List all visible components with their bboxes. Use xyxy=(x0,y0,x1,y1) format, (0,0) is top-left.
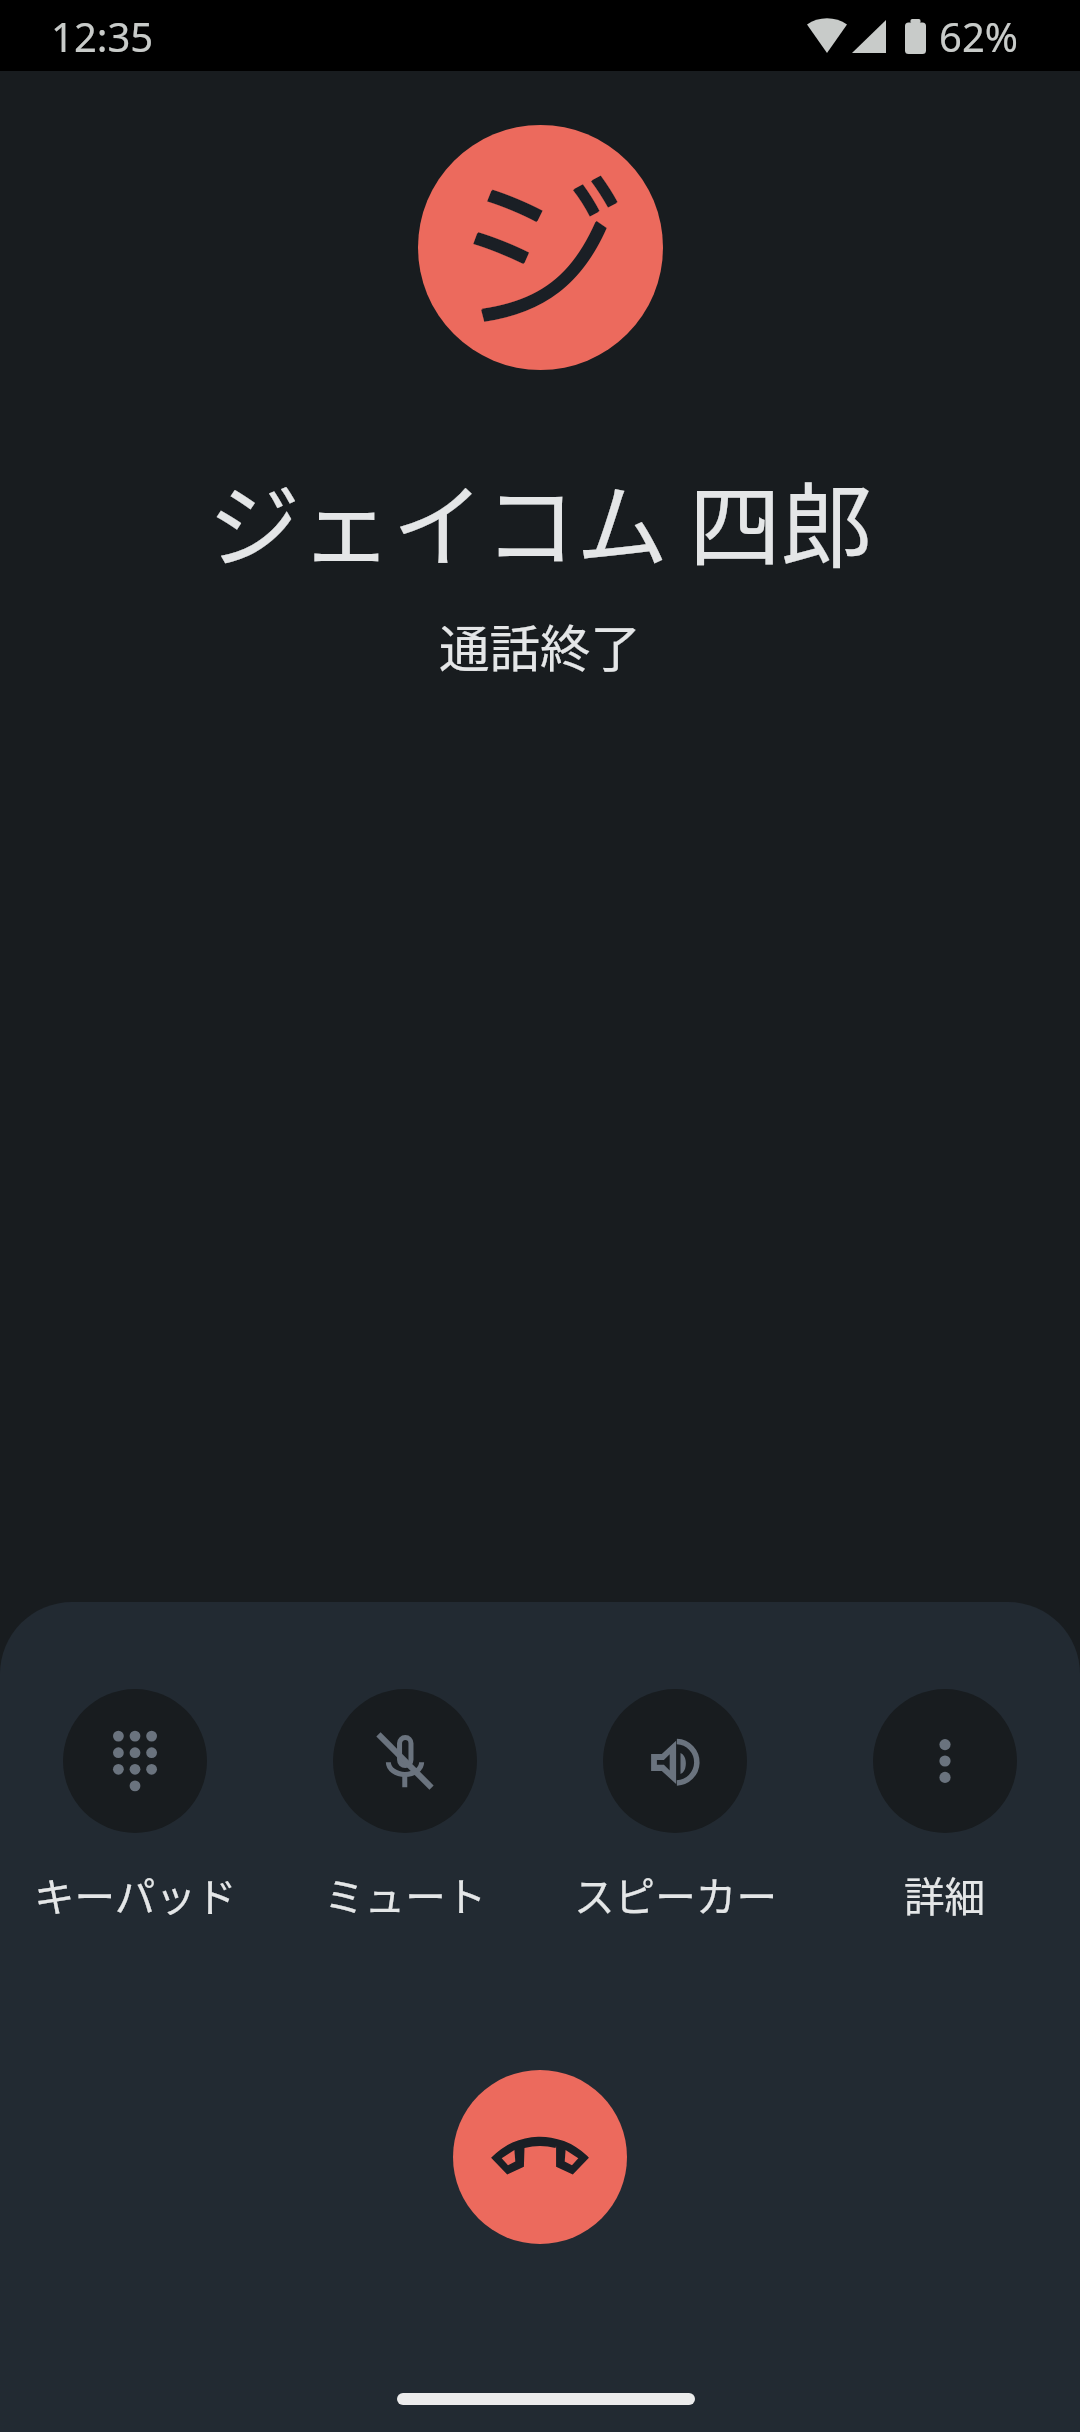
staticText: キーパッド xyxy=(34,1865,237,1924)
button[interactable]: Contact photo xyxy=(418,125,663,370)
staticText: ジ xyxy=(459,140,627,370)
button[interactable]: More options xyxy=(810,1689,1080,1924)
staticText: 62% xyxy=(939,9,1018,63)
button[interactable]: End call xyxy=(453,2070,627,2244)
staticText: ジェイコム 四郎 xyxy=(208,453,873,586)
button[interactable]: Dialpad xyxy=(0,1689,270,1924)
button[interactable]: Mute xyxy=(270,1689,540,1924)
staticText: 通話終了 xyxy=(439,608,641,681)
staticText: スピーカー xyxy=(574,1865,777,1924)
button[interactable]: Speaker xyxy=(540,1689,810,1924)
staticText: 12:35 xyxy=(51,9,154,63)
staticText: 詳細 xyxy=(904,1865,986,1924)
staticText: ミュート xyxy=(324,1865,487,1924)
staticText: ジ xyxy=(458,141,626,370)
